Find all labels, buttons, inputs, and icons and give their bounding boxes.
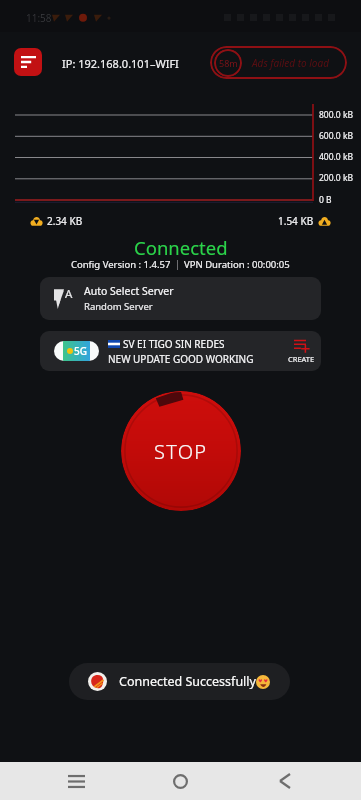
staticText: 800.0 kB: [319, 109, 354, 121]
staticText: Connected Successfully: [119, 673, 256, 690]
staticText: 2.34 KB: [47, 214, 83, 228]
staticText: CREATE: [288, 354, 315, 364]
staticText: 5G: [74, 344, 87, 358]
staticText: Auto Select Server: [84, 284, 174, 298]
staticText: SV EI TIGO SIN REDES: [123, 337, 225, 351]
button[interactable]: Recents: [56, 762, 97, 800]
staticText: 200.0 kB: [319, 172, 354, 184]
staticText: Connected: [134, 235, 228, 260]
staticText: 1.54 KB: [278, 214, 314, 228]
staticText: 400.0 kB: [319, 151, 354, 163]
staticText: Random Server: [84, 300, 153, 313]
staticText: IP: 192.168.0.101–WIFI: [62, 56, 179, 71]
button[interactable]: Connected Successfully: [69, 663, 290, 700]
staticText: 0 B: [319, 194, 332, 206]
staticText: 11:58: [26, 11, 52, 25]
staticText: 58m: [219, 57, 238, 69]
button[interactable]: STOP: [121, 391, 241, 511]
staticText: Ads failed to load: [252, 56, 329, 70]
staticText: A: [65, 286, 73, 302]
staticText: 600.0 kB: [319, 130, 354, 142]
button[interactable]: Menu: [14, 48, 42, 76]
button[interactable]: 5G: [40, 331, 321, 371]
button[interactable]: Back: [264, 762, 305, 800]
button[interactable]: A: [40, 277, 321, 320]
staticText: Config Version : 1.4.57: [71, 258, 171, 271]
button[interactable]: Home: [160, 762, 201, 800]
staticText: VPN Duration : 00:00:05: [184, 258, 290, 271]
button[interactable]: 58m: [210, 46, 347, 79]
staticText: STOP: [154, 438, 208, 465]
staticText: NEW UPDATE GOOD WORKING: [108, 352, 254, 366]
button[interactable]: Create: [288, 339, 315, 364]
